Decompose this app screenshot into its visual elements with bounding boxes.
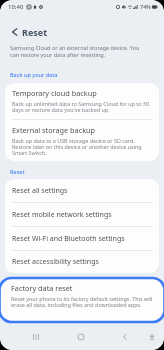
staticText: Temporary cloud backup xyxy=(12,88,97,98)
staticText: Samsung Cloud or an external storage dev… xyxy=(10,44,149,58)
staticText: Back up unlimited data to Samsung Cloud … xyxy=(12,100,151,114)
staticText: Back up data to a USB storage device or … xyxy=(12,137,151,157)
button[interactable]: Temporary cloud backup xyxy=(5,83,159,119)
staticText: External storage backup xyxy=(12,125,96,135)
button[interactable]: Navigate up xyxy=(5,23,23,41)
staticText: Reset accessibility settings xyxy=(12,257,99,267)
button[interactable]: Back xyxy=(114,326,136,348)
staticText: Reset xyxy=(10,168,25,175)
button[interactable]: Reset all settings xyxy=(5,179,159,202)
button[interactable]: Reset accessibility settings xyxy=(5,251,159,273)
button[interactable]: Home xyxy=(70,326,92,348)
button[interactable]: Recent apps xyxy=(25,326,47,348)
staticText: Reset mobile network settings xyxy=(12,210,112,220)
staticText: 74% xyxy=(140,3,151,10)
button[interactable]: Accessibility xyxy=(141,326,163,348)
staticText: Back up your data xyxy=(10,71,58,78)
staticText: 10:40 xyxy=(8,3,24,11)
button[interactable]: External storage backup xyxy=(5,120,159,161)
button[interactable]: Factory data reset xyxy=(0,277,164,323)
button[interactable]: Reset Wi-Fi and Bluetooth settings xyxy=(5,227,159,250)
button[interactable]: Reset mobile network settings xyxy=(5,203,159,226)
staticText: Factory data reset xyxy=(11,283,73,293)
staticText: Reset Wi-Fi and Bluetooth settings xyxy=(12,234,125,244)
staticText: Reset your phone to its factory default … xyxy=(11,295,157,309)
staticText: Reset all settings xyxy=(12,186,68,196)
staticText: Reset xyxy=(22,26,48,38)
